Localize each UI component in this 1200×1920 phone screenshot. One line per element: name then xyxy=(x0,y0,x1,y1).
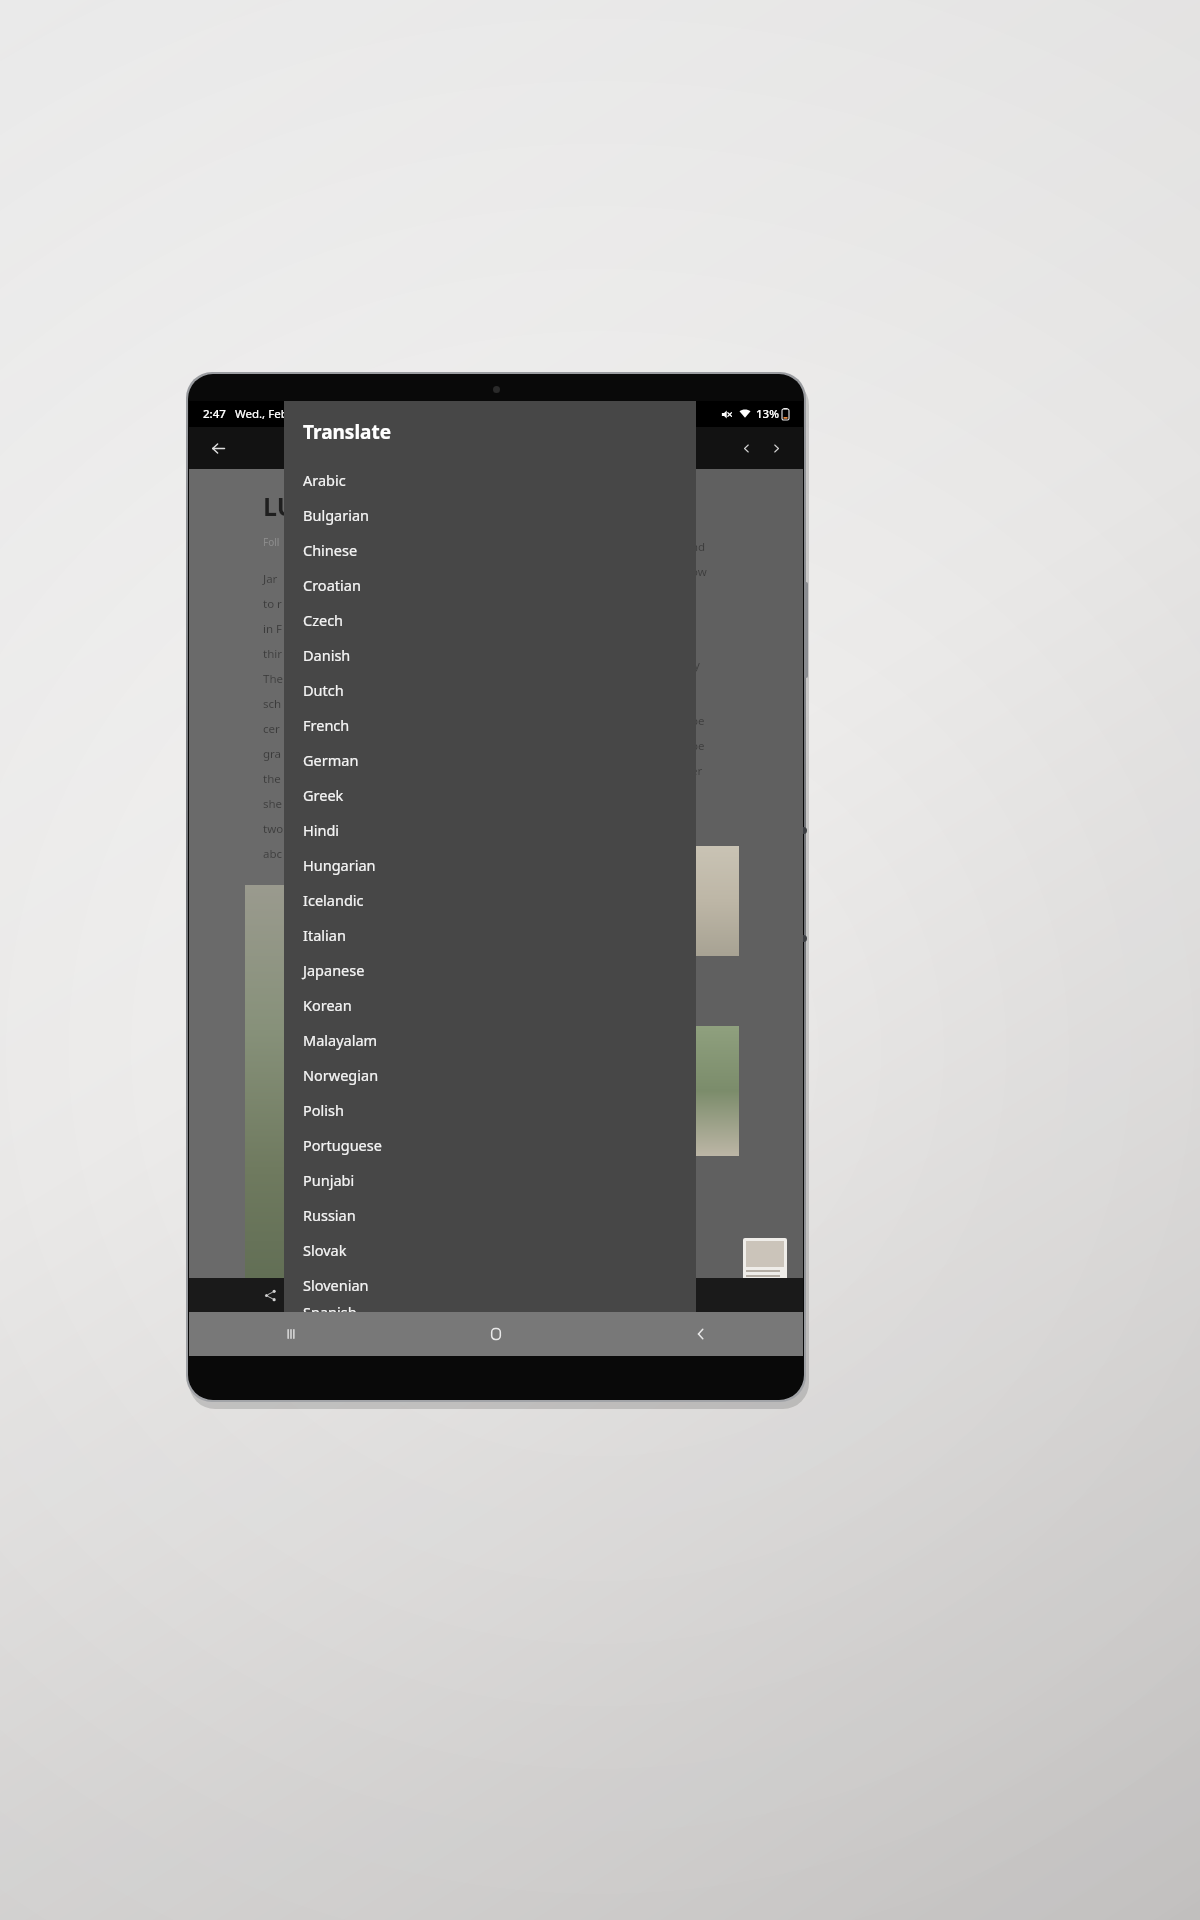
button[interactable]: Icelandic xyxy=(284,882,696,917)
staticText: Arabic xyxy=(303,470,346,490)
button[interactable]: Bulgarian xyxy=(284,497,696,532)
staticText: Translate xyxy=(303,419,392,445)
staticText: Russian xyxy=(303,1205,356,1225)
button[interactable]: Page thumbnail xyxy=(743,1238,787,1304)
staticText: 2:47 xyxy=(203,406,226,422)
staticText: the xyxy=(263,771,281,787)
button[interactable]: Norwegian xyxy=(284,1057,696,1092)
staticText: Chinese xyxy=(303,540,358,560)
staticText: sch xyxy=(263,696,282,712)
staticText: The xyxy=(263,671,283,687)
staticText: Hindi xyxy=(303,820,340,840)
staticText: Slovenian xyxy=(303,1275,369,1295)
button[interactable]: Slovenian xyxy=(284,1267,696,1302)
staticText: er xyxy=(691,763,703,779)
staticText: 13% xyxy=(756,406,779,422)
staticText: LU xyxy=(263,489,296,523)
staticText: Punjabi xyxy=(303,1170,355,1190)
staticText: Greek xyxy=(303,785,344,805)
staticText: Polish xyxy=(303,1100,344,1120)
staticText: thir xyxy=(263,646,282,662)
staticText: Italian xyxy=(303,925,346,945)
button[interactable]: Malayalam xyxy=(284,1022,696,1057)
staticText: Korean xyxy=(303,995,352,1015)
staticText: Portuguese xyxy=(303,1135,382,1155)
button[interactable]: Korean xyxy=(284,987,696,1022)
staticText: Malayalam xyxy=(303,1030,378,1050)
staticText: ly xyxy=(691,657,700,673)
button[interactable]: German xyxy=(284,742,696,777)
button[interactable]: Danish xyxy=(284,637,696,672)
button[interactable]: Previous xyxy=(733,435,759,461)
button[interactable]: Polish xyxy=(284,1092,696,1127)
staticText: cer xyxy=(263,721,280,737)
staticText: Czech xyxy=(303,610,344,630)
staticText: Japanese xyxy=(303,960,365,980)
staticText: abc xyxy=(263,846,283,862)
staticText: Dutch xyxy=(303,680,344,700)
button[interactable]: Next xyxy=(763,435,789,461)
staticText: be xyxy=(691,713,705,729)
button[interactable]: Back xyxy=(203,433,233,463)
button[interactable]: French xyxy=(284,707,696,742)
staticText: ow xyxy=(691,564,707,580)
button[interactable]: Dutch xyxy=(284,672,696,707)
button[interactable]: Home xyxy=(393,1312,598,1356)
staticText: French xyxy=(303,715,350,735)
staticText: Jar xyxy=(263,571,278,587)
staticText: Foll xyxy=(263,535,280,549)
button[interactable]: Japanese xyxy=(284,952,696,987)
button[interactable]: Czech xyxy=(284,602,696,637)
staticText: she xyxy=(263,796,283,812)
button[interactable]: Croatian xyxy=(284,567,696,602)
staticText: be xyxy=(691,738,705,754)
staticText: Icelandic xyxy=(303,890,364,910)
staticText: Slovak xyxy=(303,1240,347,1260)
staticText: two xyxy=(263,821,284,837)
staticText: Hungarian xyxy=(303,855,376,875)
button[interactable]: Recents xyxy=(189,1312,393,1356)
staticText: Wed., Feb. 21 xyxy=(235,406,307,422)
staticText: Croatian xyxy=(303,575,361,595)
button[interactable]: Share xyxy=(257,1282,283,1308)
staticText: Spanish xyxy=(303,1302,357,1312)
button[interactable]: Back xyxy=(598,1312,803,1356)
staticText: to r xyxy=(263,596,282,612)
button[interactable]: Hindi xyxy=(284,812,696,847)
button[interactable]: Hungarian xyxy=(284,847,696,882)
staticText: German xyxy=(303,750,359,770)
button[interactable]: Punjabi xyxy=(284,1162,696,1197)
staticText: nd xyxy=(691,539,706,555)
button[interactable]: Italian xyxy=(284,917,696,952)
staticText: in F xyxy=(263,621,283,637)
button[interactable]: Greek xyxy=(284,777,696,812)
staticText: Danish xyxy=(303,645,351,665)
button[interactable]: Spanish xyxy=(284,1302,696,1312)
button[interactable]: Portuguese xyxy=(284,1127,696,1162)
staticText: Bulgarian xyxy=(303,505,370,525)
button[interactable]: Slovak xyxy=(284,1232,696,1267)
button[interactable]: Russian xyxy=(284,1197,696,1232)
staticText: Norwegian xyxy=(303,1065,379,1085)
button[interactable]: Chinese xyxy=(284,532,696,567)
button[interactable]: Arabic xyxy=(284,462,696,497)
staticText: gra xyxy=(263,746,282,762)
